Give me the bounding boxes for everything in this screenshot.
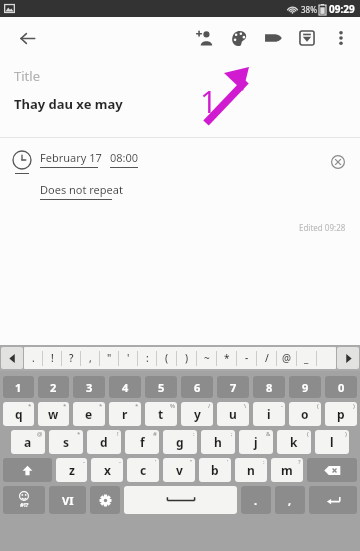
button[interactable]: /: [257, 347, 276, 369]
staticText: *: [63, 402, 67, 410]
button[interactable]: :: [138, 347, 156, 369]
staticText: n: [247, 462, 255, 478]
button[interactable]: ": [100, 347, 118, 369]
button[interactable]: ': [127, 458, 159, 482]
button[interactable]: -: [237, 347, 256, 369]
button[interactable]: !: [43, 347, 61, 369]
button[interactable]: @: [277, 347, 296, 369]
button[interactable]: Label: [256, 21, 290, 55]
button[interactable]: ): [177, 347, 196, 369]
button[interactable]: 4: [109, 376, 141, 398]
button[interactable]: 2: [38, 376, 69, 398]
button[interactable]: ?: [271, 458, 303, 482]
button[interactable]: ': [199, 458, 231, 482]
button[interactable]: Add collaborator: [188, 21, 222, 55]
button[interactable]: &: [239, 430, 273, 454]
staticText: 0: [338, 380, 345, 395]
staticText: f: [140, 434, 145, 450]
staticText: February 17: [40, 150, 102, 165]
button[interactable]: February 17: [0, 150, 360, 174]
button[interactable]: (: [157, 347, 176, 369]
button[interactable]: @: [11, 430, 45, 454]
button[interactable]: Emoji and symbols: [3, 486, 45, 514]
staticText: 5: [158, 380, 165, 395]
button[interactable]: 5: [145, 376, 177, 398]
staticText: *: [99, 402, 103, 410]
staticText: v: [176, 462, 183, 478]
staticText: 09:29: [329, 2, 355, 16]
button[interactable]: 0: [325, 376, 357, 398]
button[interactable]: 7: [217, 376, 249, 398]
button[interactable]: ): [315, 430, 349, 454]
button[interactable]: Enter: [309, 486, 357, 514]
button[interactable]: :: [235, 458, 267, 482]
button[interactable]: Backspace: [307, 458, 357, 482]
staticText: _: [304, 351, 309, 365]
button[interactable]: ": [163, 458, 195, 482]
button[interactable]: :: [163, 430, 197, 454]
staticText: *: [135, 402, 139, 410]
button[interactable]: *: [109, 402, 141, 426]
button[interactable]: .: [241, 486, 271, 514]
staticText: :: [193, 430, 195, 438]
button[interactable]: !: [87, 430, 121, 454]
button[interactable]: Archive: [290, 21, 324, 55]
button[interactable]: ?: [62, 347, 80, 369]
button[interactable]: Remove reminder: [326, 150, 350, 174]
staticText: 8: [266, 380, 273, 395]
button[interactable]: ': [119, 347, 137, 369]
button[interactable]: Settings: [90, 486, 120, 514]
staticText: ": [107, 351, 112, 365]
button[interactable]: More options: [324, 21, 358, 55]
staticText: @: [37, 430, 43, 438]
staticText: x: [104, 462, 111, 478]
button[interactable]: Back: [10, 21, 44, 55]
button[interactable]: -: [56, 458, 87, 482]
button[interactable]: (: [277, 430, 311, 454]
button[interactable]: ~: [197, 347, 216, 369]
button[interactable]: ,: [81, 347, 99, 369]
staticText: ': [227, 458, 229, 466]
button[interactable]: %: [145, 402, 177, 426]
staticText: Title: [14, 67, 40, 85]
button[interactable]: *: [49, 430, 83, 454]
button[interactable]: #: [125, 430, 159, 454]
staticText: ": [190, 458, 193, 466]
button[interactable]: Next: [337, 347, 359, 369]
button[interactable]: .: [24, 347, 42, 369]
staticText: :: [146, 351, 149, 365]
button[interactable]: 8: [253, 376, 285, 398]
staticText: ;: [231, 430, 233, 438]
button[interactable]: ;: [201, 430, 235, 454]
staticText: Does not repeat: [40, 182, 123, 197]
button[interactable]: Does not repeat: [40, 182, 360, 200]
button[interactable]: _: [297, 347, 316, 369]
button[interactable]: Previous: [1, 347, 23, 369]
button[interactable]: 3: [73, 376, 105, 398]
button[interactable]: Shift: [3, 458, 52, 482]
button[interactable]: -: [91, 458, 123, 482]
staticText: 08:00: [110, 150, 139, 165]
button[interactable]: *: [3, 402, 34, 426]
button[interactable]: 1: [3, 376, 34, 398]
staticText: :: [263, 458, 265, 466]
button[interactable]: VI: [49, 486, 86, 514]
staticText: #!?: [20, 501, 29, 509]
button[interactable]: ): [325, 402, 357, 426]
button[interactable]: ,: [275, 486, 305, 514]
staticText: q: [15, 406, 23, 422]
button[interactable]: *: [217, 347, 236, 369]
button[interactable]: Change colour: [222, 21, 256, 55]
button[interactable]: 9: [289, 376, 321, 398]
button[interactable]: *: [73, 402, 105, 426]
button[interactable]: *: [38, 402, 69, 426]
button[interactable]: (: [289, 402, 321, 426]
button[interactable]: 6: [181, 376, 213, 398]
staticText: @: [282, 351, 291, 365]
staticText: -: [281, 402, 283, 410]
button[interactable]: \: [217, 402, 249, 426]
button[interactable]: -: [253, 402, 285, 426]
button[interactable]: /: [181, 402, 213, 426]
button[interactable]: Space: [124, 486, 237, 514]
